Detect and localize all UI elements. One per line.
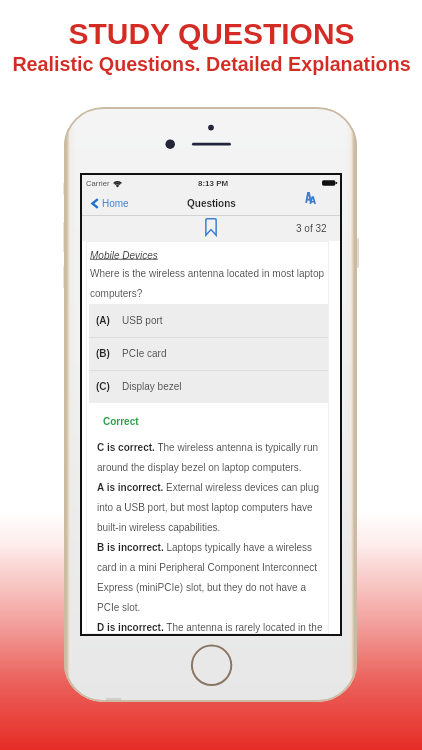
button[interactable]: Bookmark [200, 218, 222, 240]
button[interactable]: (C) [89, 370, 328, 403]
button[interactable]: (B) [89, 337, 328, 370]
staticText: 8:13 PM [198, 179, 229, 188]
staticText: Mobile Devices [90, 250, 158, 261]
staticText: PCIe card [122, 348, 167, 359]
staticText: STUDY QUESTIONS [68, 17, 355, 51]
staticText: Carrier [86, 179, 110, 188]
staticText: (B) [96, 348, 110, 359]
staticText: Correct [103, 416, 139, 427]
staticText: Home [102, 198, 129, 209]
staticText: Display bezel [122, 381, 182, 392]
staticText: Questions [187, 198, 236, 209]
staticText: (C) [96, 381, 110, 392]
button[interactable]: (A) [89, 304, 328, 337]
staticText: C is correct. The wireless antenna is ty… [97, 442, 327, 633]
staticText: Where is the wireless antenna located in… [90, 268, 327, 299]
button[interactable]: Home [82, 195, 135, 212]
staticText: Realistic Questions. Detailed Explanatio… [12, 53, 411, 75]
staticText: (A) [96, 315, 110, 326]
staticText: USB port [122, 315, 163, 326]
button[interactable]: Change text size [299, 192, 340, 214]
staticText: 3 of 32 [296, 223, 327, 234]
